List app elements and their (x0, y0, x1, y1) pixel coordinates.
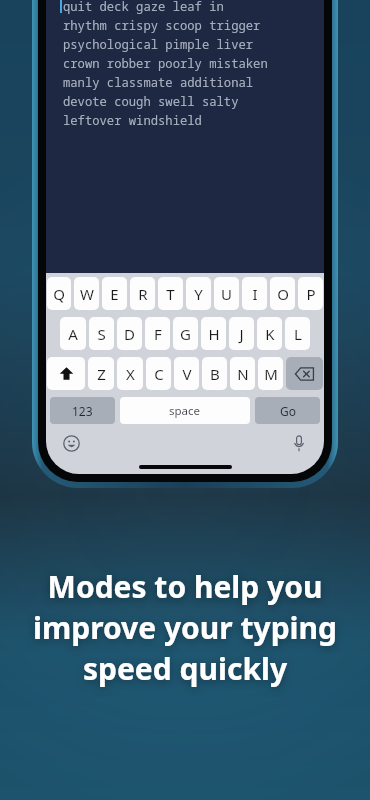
staticText: M (264, 364, 278, 384)
button[interactable]: Z (88, 357, 114, 390)
staticText: D (124, 324, 135, 344)
button[interactable]: D (117, 317, 142, 350)
staticText: Go (280, 403, 296, 419)
button[interactable]: Backspace (286, 357, 323, 390)
button[interactable]: X (117, 357, 143, 390)
staticText: T (166, 284, 175, 304)
staticText: A (68, 324, 78, 344)
staticText: E (110, 284, 119, 304)
button[interactable]: space (120, 397, 250, 424)
button[interactable]: I (242, 277, 267, 310)
staticText: I (252, 284, 258, 304)
staticText: devote cough swell salty (63, 93, 239, 110)
button[interactable]: Q (47, 277, 71, 310)
button[interactable]: F (145, 317, 170, 350)
staticText: Q (53, 284, 65, 304)
staticText: H (208, 324, 220, 344)
button[interactable]: O (270, 277, 295, 310)
staticText: 123 (72, 403, 93, 419)
staticText: R (138, 284, 148, 304)
button[interactable]: J (229, 317, 254, 350)
staticText: P (306, 284, 316, 304)
staticText: crown robber poorly mistaken (63, 55, 268, 72)
staticText: B (210, 364, 220, 384)
staticText: C (154, 364, 164, 384)
button[interactable]: M (258, 357, 283, 390)
staticText: rhythm crispy scoop trigger (63, 17, 261, 34)
button[interactable]: W (74, 277, 99, 310)
staticText: J (239, 324, 244, 344)
button[interactable]: A (60, 317, 86, 350)
staticText: K (265, 324, 275, 344)
button[interactable]: S (89, 317, 114, 350)
button[interactable]: V (174, 357, 199, 390)
button[interactable]: Y (186, 277, 211, 310)
staticText: L (294, 324, 302, 344)
staticText: S (97, 324, 106, 344)
button[interactable]: Voice input (286, 430, 312, 456)
button[interactable]: G (173, 317, 198, 350)
staticText: U (221, 284, 232, 304)
button[interactable]: L (285, 317, 310, 350)
button[interactable]: N (230, 357, 255, 390)
staticText: Modes to help you improve your typing sp… (18, 566, 352, 689)
staticText: X (126, 364, 135, 384)
staticText: V (182, 364, 192, 384)
staticText: manly classmate additional (63, 74, 254, 91)
button[interactable]: 123 (50, 397, 115, 424)
staticText: psychological pimple liver (63, 36, 254, 53)
button[interactable]: Shift (47, 357, 85, 390)
staticText: F (154, 324, 162, 344)
staticText: N (237, 364, 249, 384)
staticText: Z (97, 364, 106, 384)
button[interactable]: P (298, 277, 323, 310)
button[interactable]: B (202, 357, 227, 390)
button[interactable]: R (130, 277, 155, 310)
button[interactable]: E (102, 277, 127, 310)
staticText: quit deck gaze leaf in (63, 0, 224, 15)
staticText: Y (194, 284, 203, 304)
staticText: O (277, 284, 289, 304)
staticText: leftover windshield (63, 112, 202, 129)
staticText: space (169, 403, 201, 419)
button[interactable]: U (214, 277, 239, 310)
staticText: W (80, 284, 94, 304)
button[interactable]: Emoji (58, 430, 84, 456)
button[interactable]: Go (255, 397, 320, 424)
staticText: G (180, 324, 191, 344)
button[interactable]: H (201, 317, 226, 350)
button[interactable]: T (158, 277, 183, 310)
button[interactable]: K (257, 317, 282, 350)
button[interactable]: C (146, 357, 171, 390)
